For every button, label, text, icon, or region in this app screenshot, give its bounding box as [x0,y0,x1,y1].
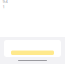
button[interactable] [4,50,61,55]
staticText: 9:41 [2,0,7,9]
